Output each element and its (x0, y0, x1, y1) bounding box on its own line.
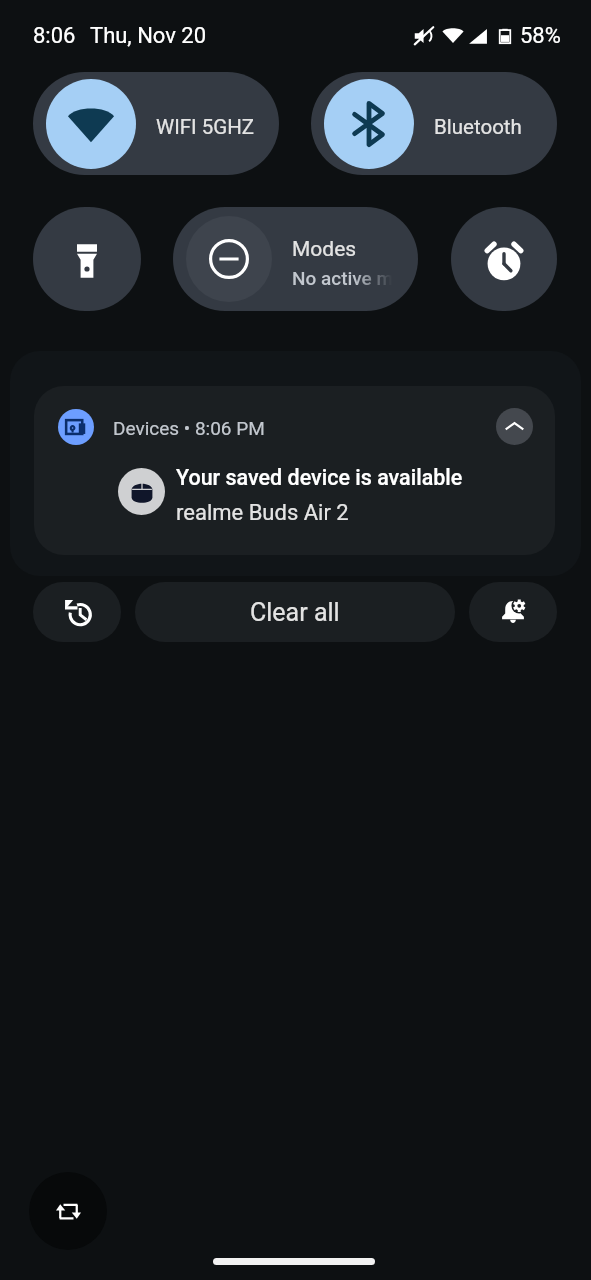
button[interactable]: Flashlight (33, 207, 141, 311)
staticText: Bluetooth (434, 115, 522, 139)
button[interactable]: Alarm (451, 207, 557, 311)
staticText: Thu, Nov 20 (90, 23, 207, 49)
button[interactable]: Clear all (135, 582, 455, 642)
button[interactable]: Rotate screen (29, 1172, 107, 1250)
button[interactable]: Modes (173, 207, 418, 311)
staticText: 8:06 (33, 23, 76, 49)
button[interactable]: Devices • 8:06 PM (34, 386, 555, 555)
button[interactable]: Bluetooth (311, 72, 557, 175)
button[interactable]: Collapse notification (496, 408, 533, 445)
button[interactable]: Notification history (33, 582, 121, 642)
button[interactable]: WIFI 5GHZ (33, 72, 279, 175)
staticText: No active modes (292, 267, 392, 289)
staticText: Clear all (250, 598, 340, 627)
staticText: Devices • 8:06 PM (113, 417, 265, 439)
button[interactable]: Notification settings (469, 582, 557, 642)
staticText: Modes (292, 237, 357, 262)
staticText: WIFI 5GHZ (156, 115, 255, 139)
staticText: 58% (520, 23, 561, 49)
staticText: realme Buds Air 2 (176, 500, 349, 526)
staticText: Your saved device is available (176, 465, 463, 490)
